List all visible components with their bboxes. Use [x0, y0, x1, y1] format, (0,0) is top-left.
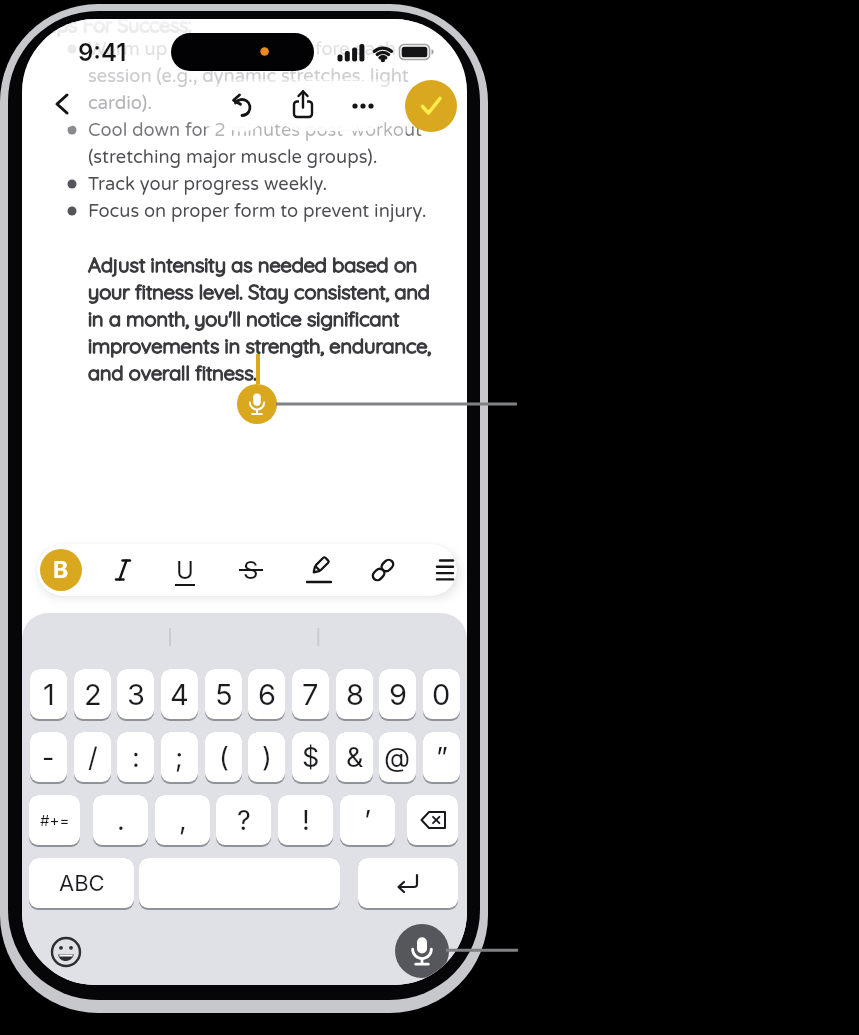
- staticText: ABC: [59, 870, 105, 897]
- staticText: 3: [127, 677, 145, 712]
- staticText: (stretching major muscle groups).: [88, 146, 378, 168]
- button[interactable]: S: [231, 548, 271, 592]
- button[interactable]: &: [336, 732, 373, 782]
- button[interactable]: [407, 795, 458, 845]
- staticText: session (e.g., dynamic stretches, light: [88, 65, 409, 87]
- button[interactable]: ”: [423, 732, 460, 782]
- staticText: 4: [170, 677, 189, 712]
- staticText: your fitness level. Stay consistent, and: [88, 279, 430, 304]
- staticText: ,: [179, 804, 187, 837]
- button[interactable]: ,: [155, 795, 210, 845]
- button[interactable]: ): [248, 732, 285, 782]
- staticText: @: [384, 741, 411, 774]
- button[interactable]: U: [165, 548, 205, 592]
- staticText: Adjust intensity as needed based on: [88, 252, 418, 277]
- staticText: Focus on proper form to prevent injury.: [88, 200, 427, 222]
- staticText: :: [132, 741, 140, 774]
- button[interactable]: [395, 924, 449, 978]
- staticText: ’: [364, 804, 372, 837]
- button[interactable]: [38, 80, 86, 128]
- button[interactable]: $: [292, 732, 329, 782]
- staticText: U: [176, 556, 194, 585]
- staticText: &: [346, 741, 364, 774]
- staticText: improvements in strength, endurance,: [88, 333, 431, 358]
- button[interactable]: [362, 549, 404, 591]
- button[interactable]: [281, 83, 325, 127]
- button[interactable]: ;: [161, 732, 198, 782]
- button[interactable]: ABC: [29, 858, 134, 908]
- button[interactable]: 5: [205, 669, 242, 719]
- staticText: !: [302, 804, 310, 837]
- button[interactable]: #+=: [29, 795, 80, 845]
- button[interactable]: 7: [292, 669, 329, 719]
- button[interactable]: @: [379, 732, 416, 782]
- button[interactable]: 8: [336, 669, 373, 719]
- staticText: 9: [389, 677, 407, 712]
- button[interactable]: /: [74, 732, 111, 782]
- staticText: Track your progress weekly.: [88, 173, 328, 195]
- button[interactable]: [341, 84, 385, 128]
- button[interactable]: [46, 932, 86, 972]
- staticText: $: [302, 741, 320, 774]
- staticText: 2: [84, 677, 102, 712]
- staticText: (: [219, 741, 229, 774]
- staticText: S: [243, 556, 259, 585]
- button[interactable]: 1: [30, 669, 67, 719]
- staticText: 6: [258, 677, 276, 712]
- staticText: 5: [215, 677, 233, 712]
- staticText: B: [53, 556, 69, 584]
- staticText: Tips For Success:: [41, 19, 192, 36]
- button[interactable]: [424, 549, 466, 591]
- staticText: in a month, you'll notice significant: [88, 306, 400, 331]
- button[interactable]: -: [30, 732, 67, 782]
- button[interactable]: ’: [340, 795, 395, 845]
- staticText: ?: [237, 804, 251, 837]
- staticText: Adjust intensity as needed based on: [88, 252, 418, 277]
- button[interactable]: .: [93, 795, 148, 845]
- button[interactable]: 3: [117, 669, 154, 719]
- button[interactable]: [237, 384, 277, 424]
- staticText: .: [117, 804, 125, 837]
- staticText: 7: [302, 677, 319, 712]
- button[interactable]: !: [278, 795, 333, 845]
- staticText: 0: [432, 677, 451, 712]
- staticText: ;: [175, 741, 184, 774]
- staticText: ”: [436, 741, 448, 774]
- staticText: 8: [346, 677, 364, 712]
- staticText: Warm up 5-10 minutes before each: [88, 38, 396, 60]
- button[interactable]: ?: [216, 795, 271, 845]
- button[interactable]: [139, 858, 340, 908]
- staticText: improvements in strength, endurance,: [88, 333, 431, 358]
- button[interactable]: [217, 82, 267, 132]
- button[interactable]: B: [40, 549, 82, 591]
- button[interactable]: 4: [161, 669, 198, 719]
- button[interactable]: [405, 80, 457, 132]
- button[interactable]: 6: [248, 669, 285, 719]
- button[interactable]: 2: [74, 669, 111, 719]
- staticText: cardio).: [88, 92, 153, 114]
- staticText: Tips For Success:: [41, 19, 192, 36]
- button[interactable]: 9: [379, 669, 416, 719]
- staticText: /: [88, 741, 98, 774]
- staticText: and overall fitness.: [88, 360, 257, 385]
- button[interactable]: [358, 858, 458, 908]
- button[interactable]: [298, 549, 340, 591]
- staticText: -: [42, 741, 55, 774]
- staticText: 9:41: [78, 38, 127, 67]
- button[interactable]: [103, 548, 143, 592]
- staticText: ): [262, 741, 272, 774]
- staticText: in a month, you'll notice significant: [88, 306, 400, 331]
- staticText: Cool down for 2 minutes post-workout: [88, 119, 423, 141]
- staticText: your fitness level. Stay consistent, and: [88, 279, 430, 304]
- staticText: #+=: [40, 811, 70, 829]
- button[interactable]: 0: [423, 669, 460, 719]
- button[interactable]: :: [117, 732, 154, 782]
- button[interactable]: (: [205, 732, 242, 782]
- staticText: 1: [43, 677, 55, 712]
- staticText: and overall fitness.: [88, 360, 257, 385]
